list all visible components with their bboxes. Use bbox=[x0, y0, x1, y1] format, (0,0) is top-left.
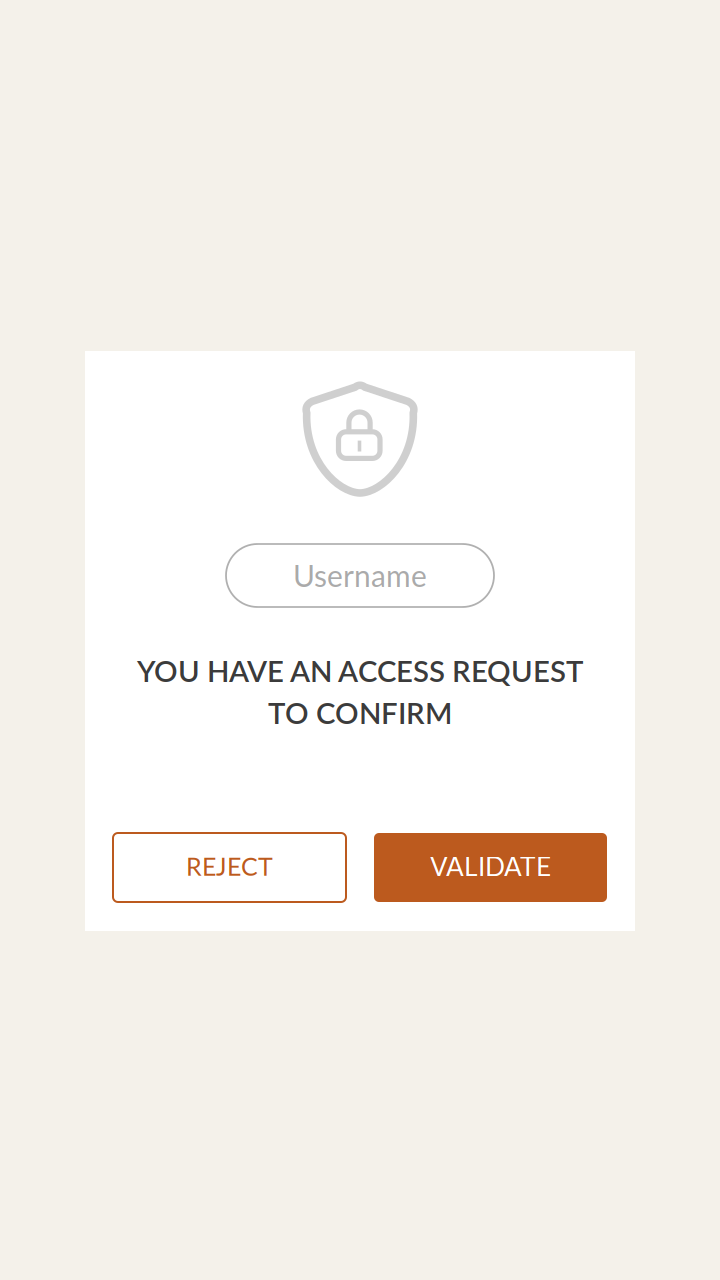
staticText: VALIDATE bbox=[430, 850, 551, 882]
button[interactable]: REJECT bbox=[113, 833, 346, 902]
button[interactable]: VALIDATE bbox=[374, 833, 607, 902]
staticText: REJECT bbox=[186, 851, 273, 881]
staticText: YOU HAVE AN ACCESS REQUEST bbox=[137, 653, 583, 688]
staticText: TO CONFIRM bbox=[268, 695, 452, 730]
staticText: Username bbox=[293, 558, 427, 593]
